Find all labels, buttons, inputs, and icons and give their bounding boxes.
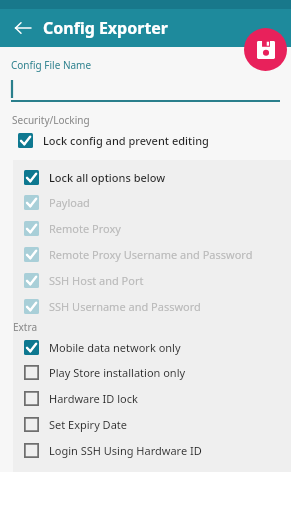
button[interactable]: Lock all options below bbox=[13, 165, 291, 189]
staticText: Hardware ID lock bbox=[49, 391, 138, 406]
button[interactable]: SSH Host and Port bbox=[13, 267, 291, 293]
staticText: Payload bbox=[49, 195, 90, 210]
staticText: Play Store installation only bbox=[49, 365, 186, 380]
button[interactable]: Lock config and prevent editing bbox=[0, 129, 291, 151]
staticText: Lock config and prevent editing bbox=[43, 133, 209, 148]
staticText: Config Exporter bbox=[43, 17, 169, 39]
staticText: Set Expiry Date bbox=[49, 417, 128, 432]
staticText: Remote Proxy bbox=[49, 221, 121, 236]
staticText: Login SSH Using Hardware ID bbox=[49, 443, 202, 458]
button[interactable]: Mobile data network only bbox=[13, 335, 291, 359]
button[interactable]: Remote Proxy bbox=[13, 215, 291, 241]
button[interactable] bbox=[11, 79, 280, 100]
staticText: Extra bbox=[13, 320, 37, 334]
staticText: SSH Username and Password bbox=[49, 299, 201, 314]
button[interactable]: Back bbox=[8, 13, 38, 43]
button[interactable]: Save bbox=[244, 28, 287, 71]
button[interactable]: Payload bbox=[13, 189, 291, 215]
staticText: Mobile data network only bbox=[49, 340, 181, 355]
staticText: Lock all options below bbox=[49, 170, 166, 185]
button[interactable]: SSH Username and Password bbox=[13, 293, 291, 319]
button[interactable]: Hardware ID lock bbox=[13, 385, 291, 411]
button[interactable]: Set Expiry Date bbox=[13, 411, 291, 437]
button[interactable]: Play Store installation only bbox=[13, 359, 291, 385]
staticText: Security/Locking bbox=[12, 113, 90, 127]
staticText: SSH Host and Port bbox=[49, 273, 144, 288]
button[interactable]: Remote Proxy Username and Password bbox=[13, 241, 291, 267]
staticText: Remote Proxy Username and Password bbox=[49, 247, 253, 262]
staticText: Config File Name bbox=[11, 58, 92, 72]
button[interactable]: Login SSH Using Hardware ID bbox=[13, 437, 291, 463]
